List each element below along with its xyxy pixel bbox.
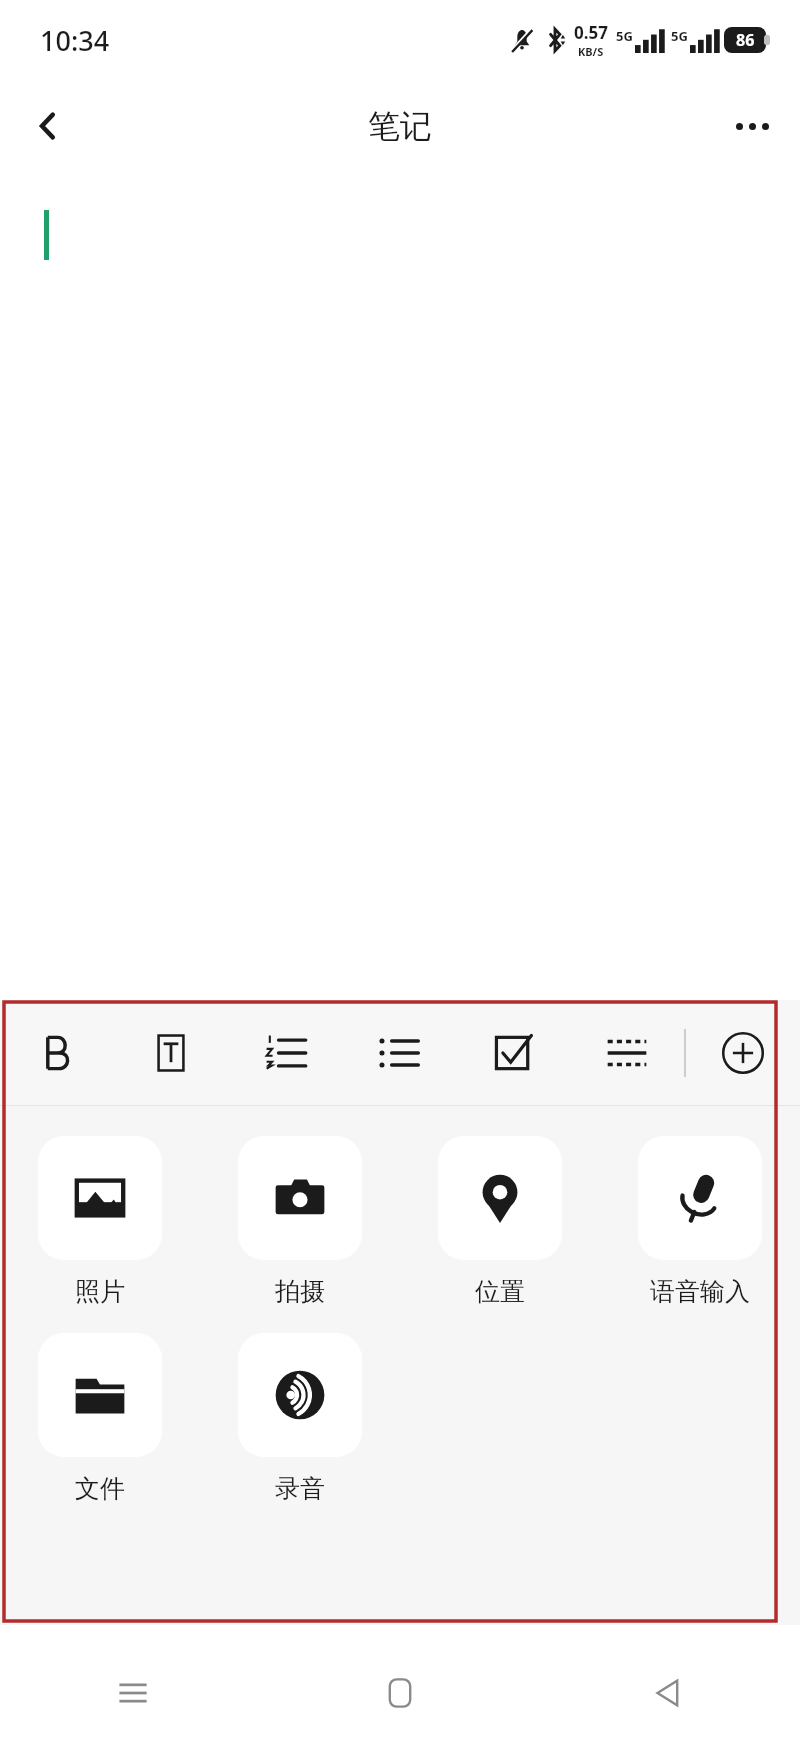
staticText: 笔记 bbox=[368, 106, 432, 146]
button[interactable]: Numbered list bbox=[228, 1000, 342, 1105]
button[interactable]: Add attachment bbox=[686, 1000, 800, 1105]
staticText: 拍摄 bbox=[275, 1276, 325, 1307]
staticText: 5G bbox=[671, 27, 688, 45]
staticText: 录音 bbox=[275, 1473, 325, 1504]
button[interactable]: Back bbox=[16, 94, 80, 158]
button[interactable]: More options bbox=[720, 94, 784, 158]
staticText: 5G bbox=[616, 27, 633, 45]
staticText: KB/S bbox=[578, 44, 604, 59]
button[interactable]: Text style bbox=[114, 1000, 228, 1105]
staticText: 位置 bbox=[475, 1276, 525, 1307]
staticText: 0.57 bbox=[574, 21, 608, 44]
staticText: 文件 bbox=[75, 1473, 125, 1504]
button[interactable]: Checklist bbox=[456, 1000, 570, 1105]
button[interactable]: Recent apps bbox=[0, 1625, 266, 1760]
button[interactable]: Back bbox=[533, 1625, 800, 1760]
button[interactable]: 语音输入 bbox=[600, 1134, 800, 1309]
button[interactable]: Home bbox=[266, 1625, 533, 1760]
button[interactable]: 位置 bbox=[400, 1134, 600, 1309]
button[interactable]: 录音 bbox=[200, 1331, 400, 1506]
button[interactable]: Bold bbox=[0, 1000, 114, 1105]
button[interactable]: Bulleted list bbox=[342, 1000, 456, 1105]
button[interactable]: Divider bbox=[570, 1000, 684, 1105]
staticText: 照片 bbox=[75, 1276, 125, 1307]
staticText: 86 bbox=[736, 29, 755, 51]
button[interactable]: 照片 bbox=[0, 1134, 200, 1309]
staticText: 10:34 bbox=[40, 22, 110, 59]
staticText: 语音输入 bbox=[650, 1276, 750, 1307]
button[interactable]: 文件 bbox=[0, 1331, 200, 1506]
button[interactable]: 拍摄 bbox=[200, 1134, 400, 1309]
